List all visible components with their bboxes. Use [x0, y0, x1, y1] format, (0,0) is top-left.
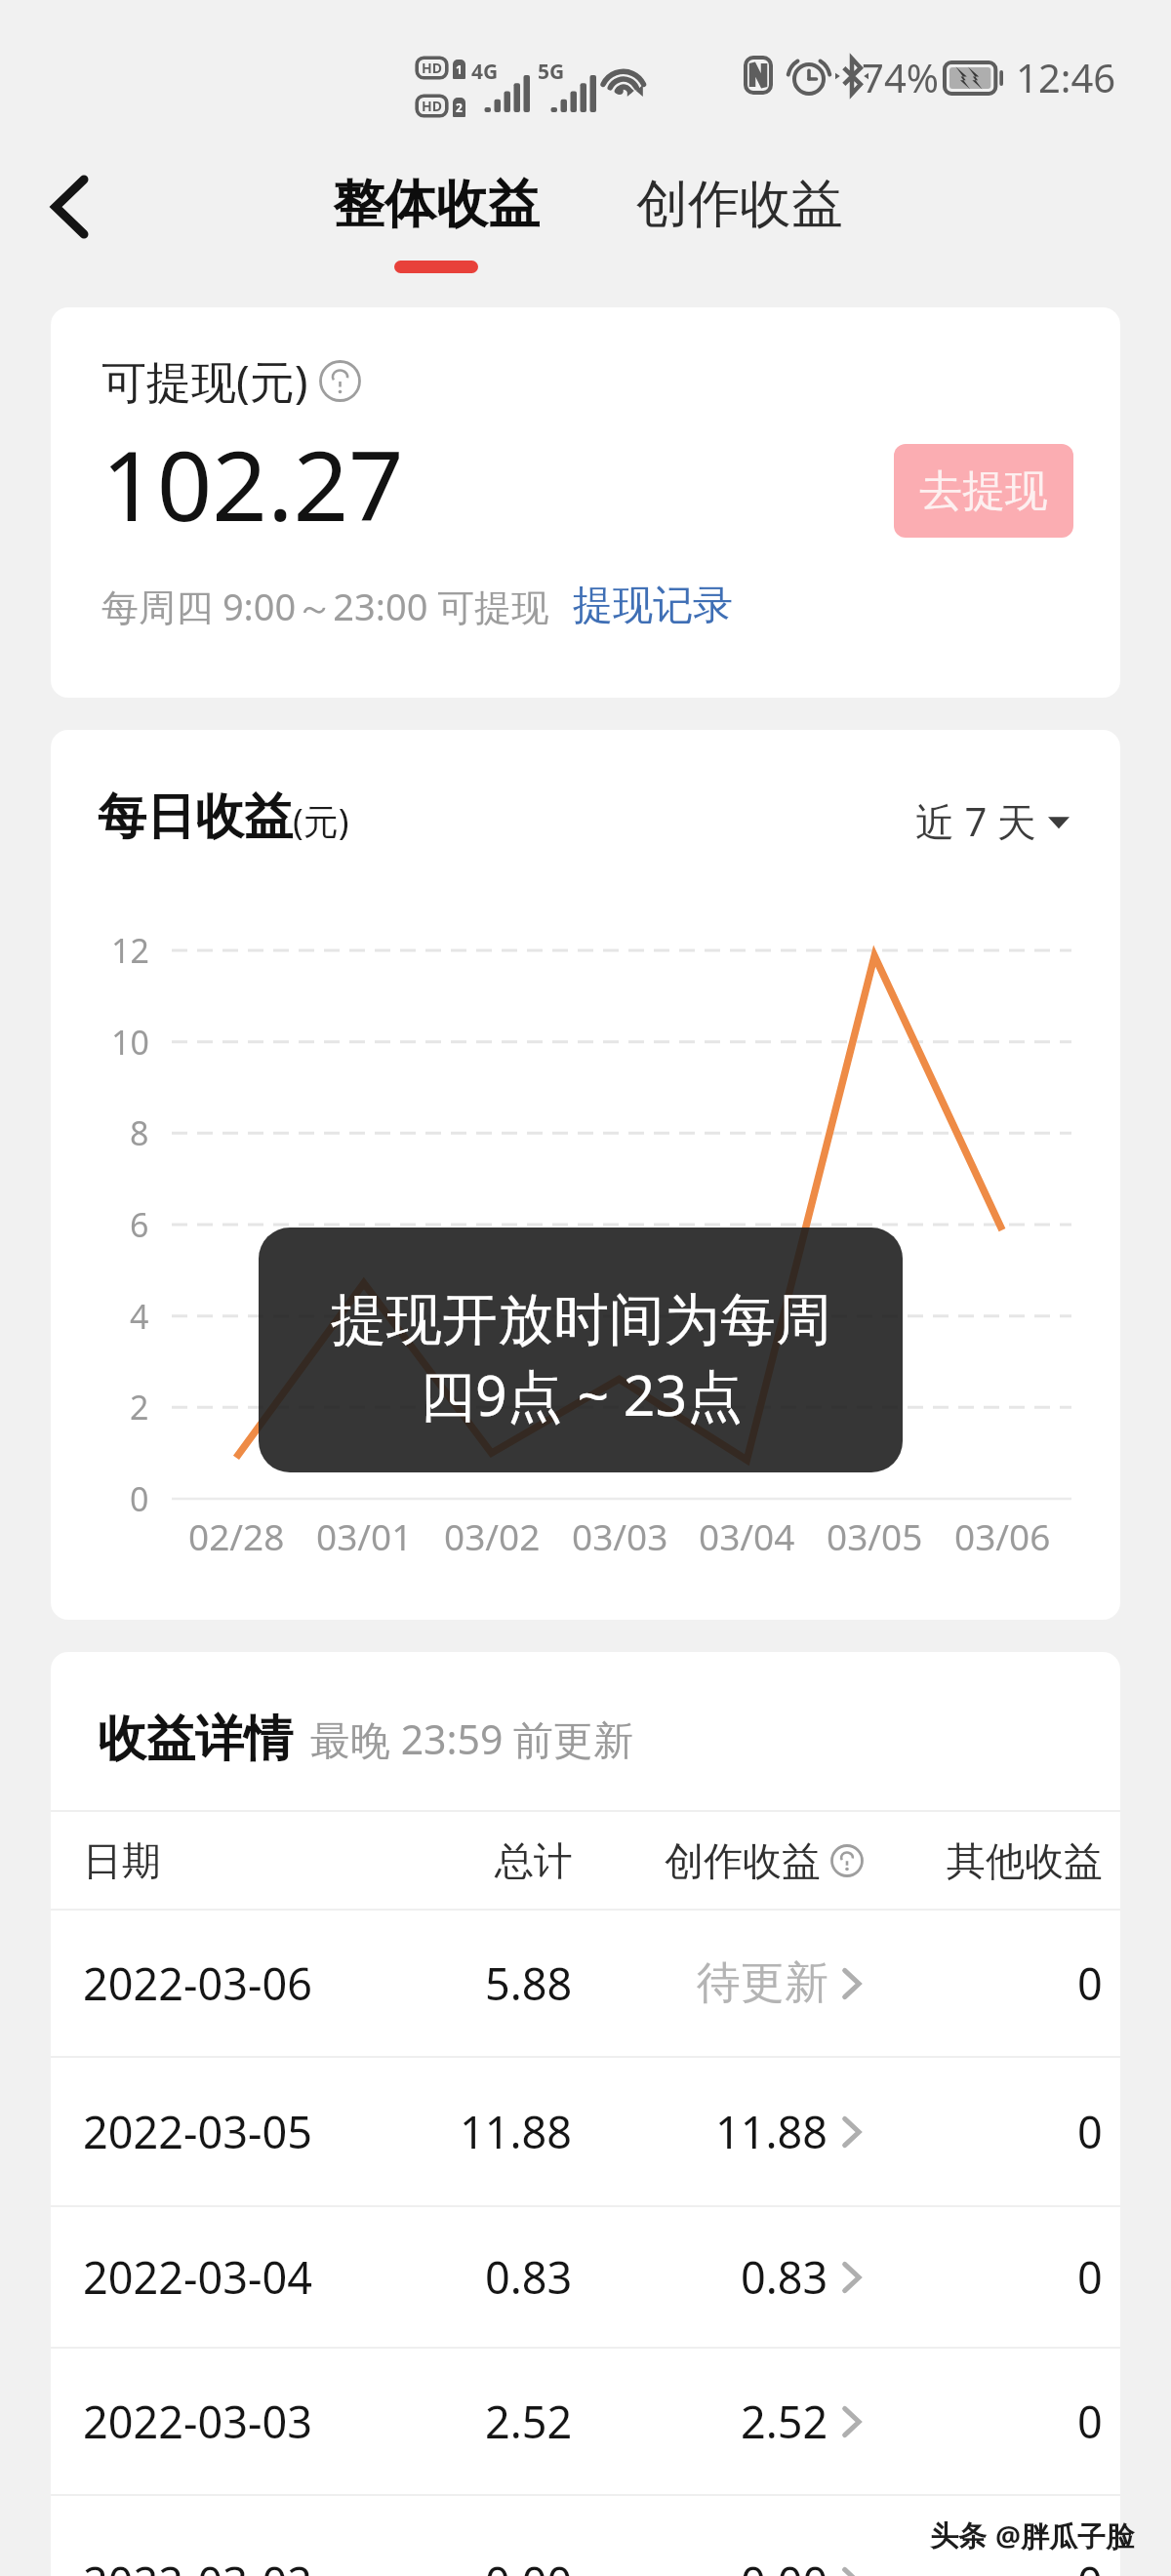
staticText: 整体收益: [333, 172, 540, 237]
button[interactable]: 提现记录: [573, 581, 733, 631]
staticText: 创作收益: [636, 172, 843, 237]
staticText: 待更新: [697, 1955, 828, 2011]
staticText: HD: [422, 97, 442, 115]
staticText: 总计: [495, 1836, 573, 1885]
staticText: 创作收益: [665, 1836, 821, 1885]
staticText: 03/04: [699, 1511, 795, 1560]
staticText: 最晚 23:59 前更新: [310, 1711, 634, 1766]
staticText: 2022-03-06: [83, 1953, 312, 2013]
button[interactable]: 2022-03-02: [51, 2496, 1120, 2576]
staticText: 2.52: [485, 2392, 573, 2451]
staticText: 1: [456, 61, 463, 77]
staticText: 03/06: [954, 1511, 1051, 1560]
staticText: 03/03: [572, 1511, 668, 1560]
staticText: 12: [111, 928, 149, 973]
staticText: 5.88: [485, 1953, 573, 2013]
staticText: 02/28: [188, 1511, 285, 1560]
button[interactable]: 2022-03-04: [51, 2207, 1120, 2347]
button[interactable]: 创作收益: [628, 172, 851, 273]
staticText: 日期: [83, 1836, 161, 1885]
staticText: 11.88: [715, 2102, 828, 2161]
staticText: 03/02: [444, 1511, 541, 1560]
button[interactable]: Back: [21, 160, 115, 254]
button[interactable]: 整体收益: [325, 172, 547, 273]
staticText: 8: [130, 1110, 149, 1155]
staticText: 74%: [862, 51, 939, 103]
staticText: 0.00: [485, 2553, 573, 2576]
staticText: 提现开放时间为每周 四9点 ~ 23点: [331, 1285, 831, 1432]
staticText: 6: [130, 1202, 149, 1247]
staticText: 2022-03-04: [83, 2247, 312, 2307]
staticText: 4: [130, 1294, 149, 1339]
staticText: 头条: [930, 2518, 987, 2555]
staticText: 0.83: [485, 2247, 573, 2307]
staticText: 2022-03-02: [83, 2553, 312, 2576]
staticText: 收益详情: [98, 1709, 293, 1770]
button[interactable]: 2022-03-05: [51, 2058, 1120, 2205]
button[interactable]: 近 7 天: [915, 794, 1070, 848]
staticText: 提现记录: [573, 581, 733, 631]
staticText: 0: [1077, 2553, 1103, 2576]
staticText: 每周四 9:00～23:00 可提现: [101, 581, 549, 631]
staticText: 每日收益: [98, 786, 293, 848]
staticText: 2022-03-05: [83, 2102, 312, 2161]
button[interactable]: 2022-03-06: [51, 1911, 1120, 2056]
staticText: 2022-03-03: [83, 2392, 312, 2451]
button[interactable]: 去提现: [894, 444, 1073, 538]
staticText: 其他收益: [947, 1836, 1103, 1885]
staticText: 0: [130, 1476, 149, 1521]
staticText: 03/05: [827, 1511, 923, 1560]
staticText: @胖瓜子脸: [995, 2516, 1135, 2556]
staticText: 2: [456, 100, 463, 115]
staticText: 0: [1077, 1953, 1103, 2013]
button[interactable]: 2022-03-03: [51, 2349, 1120, 2494]
staticText: 11.88: [460, 2102, 573, 2161]
staticText: 5G: [538, 58, 565, 86]
staticText: HD: [422, 59, 442, 77]
staticText: 0.83: [741, 2247, 828, 2307]
staticText: 去提现: [919, 464, 1048, 518]
staticText: 2.52: [741, 2392, 828, 2451]
staticText: 0.00: [741, 2553, 828, 2576]
staticText: 近 7 天: [915, 794, 1036, 848]
staticText: 12:46: [1016, 51, 1116, 103]
staticText: 0: [1077, 2392, 1103, 2451]
staticText: 0: [1077, 2247, 1103, 2307]
staticText: 0: [1077, 2102, 1103, 2161]
staticText: 可提现(元): [101, 350, 308, 412]
staticText: 4G: [471, 58, 499, 86]
staticText: 2: [130, 1385, 149, 1429]
staticText: 03/01: [316, 1511, 413, 1560]
staticText: 102.27: [101, 418, 404, 549]
staticText: 10: [111, 1020, 149, 1065]
staticText: (元): [293, 797, 349, 845]
